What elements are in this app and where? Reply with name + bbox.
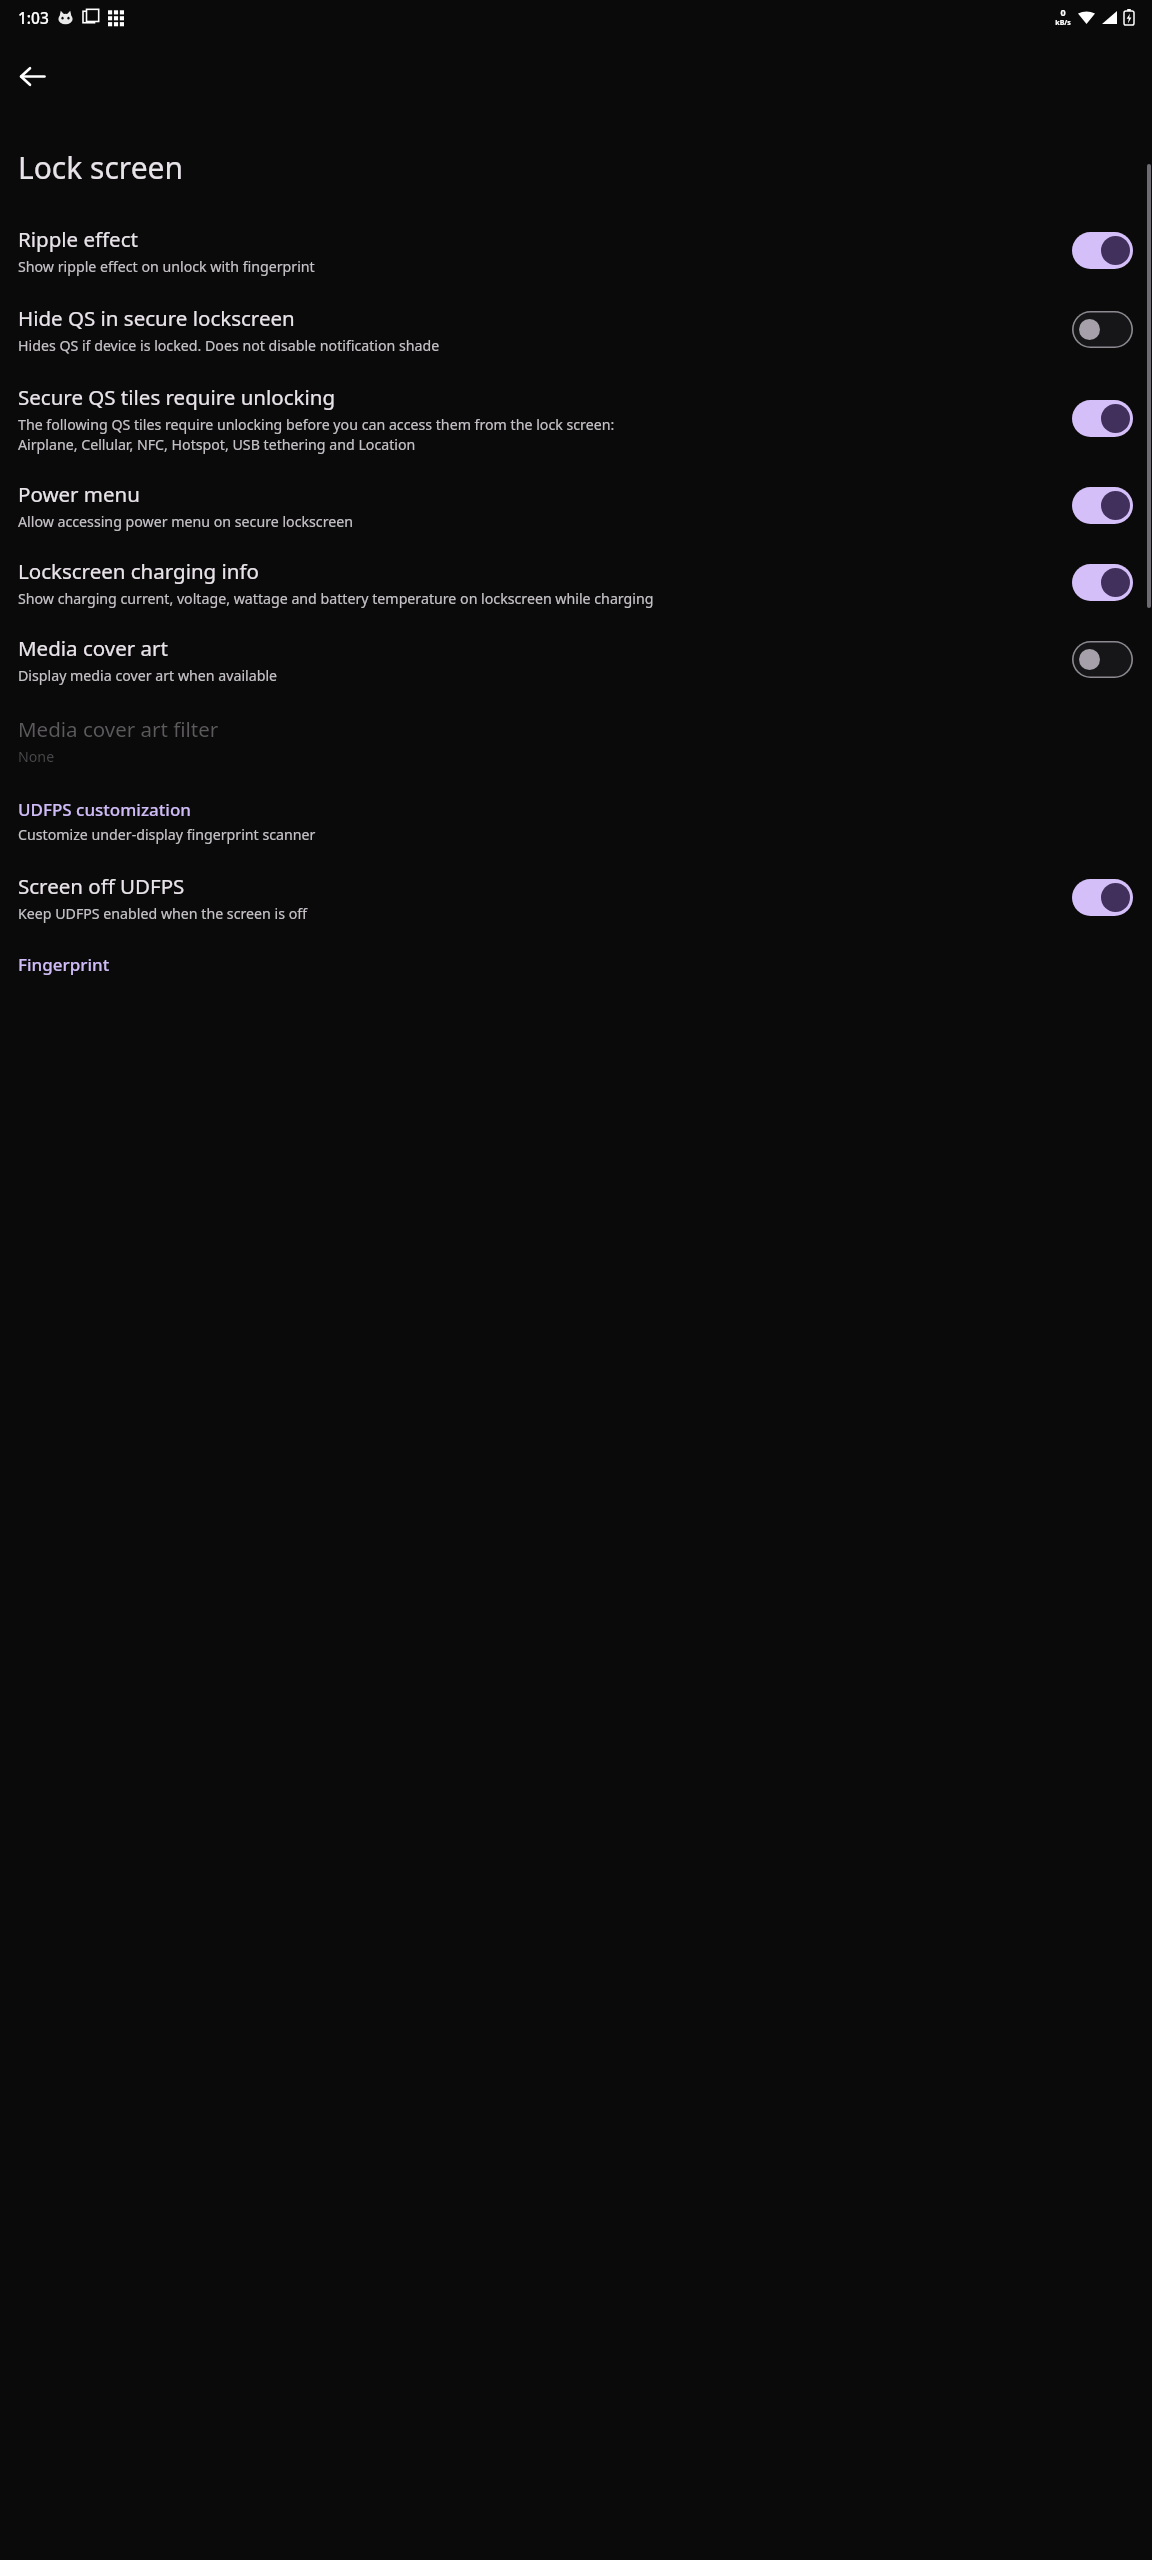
button[interactable]: Toggle off bbox=[1072, 641, 1133, 678]
staticText: Ripple effect bbox=[18, 225, 138, 253]
button[interactable]: Media cover art bbox=[0, 632, 1152, 687]
button[interactable]: Toggle on bbox=[1072, 232, 1133, 269]
button[interactable]: Media cover art filter bbox=[0, 713, 1152, 768]
button[interactable]: Screen off UDFPS bbox=[0, 870, 1152, 925]
staticText: Screen off UDFPS bbox=[18, 872, 185, 900]
button[interactable]: Toggle on bbox=[1072, 487, 1133, 524]
staticText: 1:03 bbox=[18, 7, 49, 28]
staticText: Display media cover art when available bbox=[18, 666, 278, 685]
staticText: Hide QS in secure lockscreen bbox=[18, 304, 295, 332]
button[interactable]: Toggle on bbox=[1072, 564, 1133, 601]
staticText: None bbox=[18, 747, 55, 766]
staticText: Fingerprint bbox=[18, 953, 110, 976]
button[interactable]: Fingerprint bbox=[0, 953, 1152, 976]
button[interactable]: Toggle off bbox=[1072, 311, 1133, 348]
staticText: Keep UDFPS enabled when the screen is of… bbox=[18, 904, 307, 923]
staticText: kB/s bbox=[1055, 18, 1071, 28]
staticText: Secure QS tiles require unlocking bbox=[18, 383, 336, 411]
staticText: Media cover art filter bbox=[18, 715, 219, 743]
button[interactable]: Toggle on bbox=[1072, 879, 1133, 916]
staticText: UDFPS customization bbox=[18, 798, 191, 821]
staticText: Hides QS if device is locked. Does not d… bbox=[18, 336, 440, 355]
staticText: Lockscreen charging info bbox=[18, 557, 259, 585]
button[interactable]: Hide QS in secure lockscreen bbox=[0, 302, 1152, 357]
button[interactable]: UDFPS customization bbox=[0, 796, 1152, 846]
button[interactable]: Toggle on bbox=[1072, 400, 1133, 437]
staticText: Power menu bbox=[18, 480, 140, 508]
button[interactable]: Ripple effect bbox=[0, 223, 1152, 278]
staticText: Show charging current, voltage, wattage … bbox=[18, 589, 654, 608]
staticText: Customize under-display fingerprint scan… bbox=[18, 825, 316, 844]
staticText: 0 bbox=[1060, 6, 1066, 18]
button[interactable]: Lockscreen charging info bbox=[0, 555, 1152, 610]
staticText: The following QS tiles require unlocking… bbox=[18, 415, 615, 454]
staticText: Media cover art bbox=[18, 634, 168, 662]
button[interactable]: Back bbox=[8, 52, 56, 100]
staticText: Lock screen bbox=[18, 147, 184, 188]
staticText: Allow accessing power menu on secure loc… bbox=[18, 512, 354, 531]
button[interactable]: Secure QS tiles require unlocking bbox=[0, 381, 1152, 456]
button[interactable]: Power menu bbox=[0, 478, 1152, 533]
staticText: Show ripple effect on unlock with finger… bbox=[18, 257, 315, 276]
